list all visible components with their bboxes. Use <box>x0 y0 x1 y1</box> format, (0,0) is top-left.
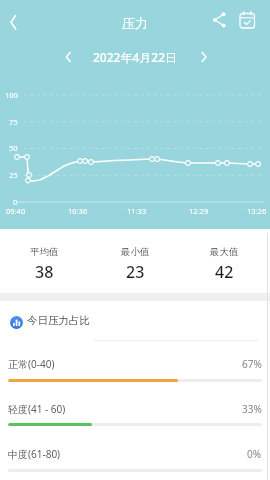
staticText: 75 <box>9 117 18 127</box>
staticText: 11:33 <box>127 206 147 216</box>
staticText: 42 <box>215 261 234 283</box>
staticText: 12:29 <box>189 206 209 216</box>
button[interactable] <box>0 443 270 480</box>
staticText: 100 <box>5 90 18 100</box>
button[interactable]: 2022年4月22日 <box>93 49 178 65</box>
staticText: 50 <box>9 143 18 153</box>
staticText: 25 <box>9 170 18 180</box>
button[interactable] <box>196 48 214 66</box>
staticText: 0 <box>13 197 18 207</box>
staticText: 最小值 <box>121 246 150 258</box>
button[interactable] <box>0 353 270 393</box>
button[interactable] <box>60 48 78 66</box>
staticText: 10:36 <box>68 206 88 216</box>
staticText: 0% <box>247 447 262 461</box>
staticText: 13:26 <box>247 206 267 216</box>
staticText: 23 <box>126 261 145 283</box>
staticText: 中度(61-80) <box>8 447 61 461</box>
staticText: 09:40 <box>6 206 26 216</box>
staticText: 压力 <box>122 15 148 31</box>
button[interactable] <box>210 10 230 30</box>
button[interactable] <box>0 229 270 293</box>
staticText: 今日压力占比 <box>27 314 90 327</box>
button[interactable]: 压力 <box>122 15 148 31</box>
staticText: 平均值 <box>30 246 59 258</box>
staticText: 33% <box>242 402 262 416</box>
button[interactable] <box>237 10 257 30</box>
staticText: 38 <box>35 261 54 283</box>
staticText: 轻度(41 - 60) <box>8 402 66 416</box>
staticText: 最大值 <box>210 246 239 258</box>
staticText: 67% <box>242 357 262 371</box>
staticText: 正常(0-40) <box>8 357 55 371</box>
button[interactable] <box>0 398 270 438</box>
staticText: 2022年4月22日 <box>93 49 178 65</box>
button[interactable] <box>6 12 26 32</box>
button[interactable] <box>8 301 270 341</box>
